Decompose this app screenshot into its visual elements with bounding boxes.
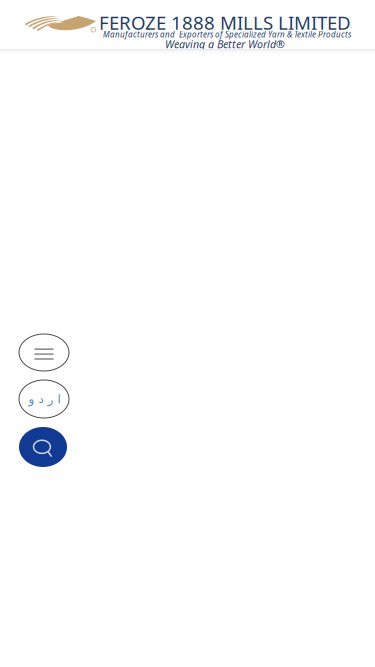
staticText: Manufacturers and Exporters of Specializ…	[103, 29, 351, 40]
button[interactable]: Menu	[19, 334, 69, 371]
staticText: Weaving a Better World®	[165, 37, 285, 51]
staticText: FEROZE 1888 MILLS LIMITED	[99, 10, 351, 35]
button[interactable]: Search	[19, 427, 67, 467]
button[interactable]: ا ر د و	[19, 380, 69, 418]
staticText: ا ر د و	[28, 392, 60, 406]
